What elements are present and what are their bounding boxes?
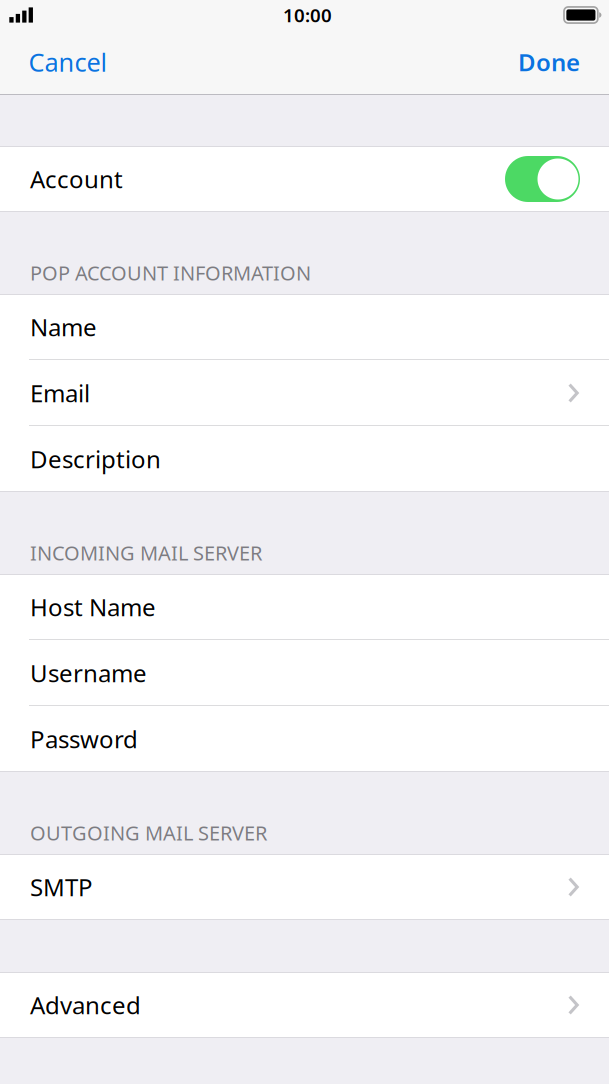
staticText: Advanced bbox=[30, 989, 141, 1021]
staticText: Username bbox=[30, 657, 147, 689]
staticText: Name bbox=[30, 311, 97, 343]
staticText: OUTGOING MAIL SERVER bbox=[30, 819, 267, 846]
staticText: 10:00 bbox=[283, 3, 332, 27]
staticText: Description bbox=[30, 443, 161, 475]
button[interactable]: Done bbox=[500, 30, 609, 94]
staticText: Password bbox=[30, 723, 138, 755]
staticText: Account bbox=[30, 163, 123, 195]
staticText: Cancel bbox=[29, 45, 108, 79]
button[interactable]: Email bbox=[0, 360, 609, 426]
button[interactable]: Account bbox=[0, 146, 609, 212]
staticText: Email bbox=[30, 377, 90, 409]
button[interactable]: Account bbox=[505, 156, 580, 202]
staticText: Host Name bbox=[30, 591, 156, 623]
staticText: POP ACCOUNT INFORMATION bbox=[30, 259, 311, 286]
button[interactable]: Host Name bbox=[0, 574, 609, 640]
button[interactable]: Username bbox=[0, 640, 609, 706]
button[interactable]: Advanced bbox=[0, 972, 609, 1038]
button[interactable]: Password bbox=[0, 706, 609, 772]
staticText: Done bbox=[518, 46, 580, 78]
staticText: INCOMING MAIL SERVER bbox=[30, 539, 262, 566]
staticText: SMTP bbox=[30, 871, 93, 903]
button[interactable]: SMTP bbox=[0, 854, 609, 920]
button[interactable]: Name bbox=[0, 294, 609, 360]
button[interactable]: Cancel bbox=[0, 30, 126, 94]
button[interactable]: Description bbox=[0, 426, 609, 492]
